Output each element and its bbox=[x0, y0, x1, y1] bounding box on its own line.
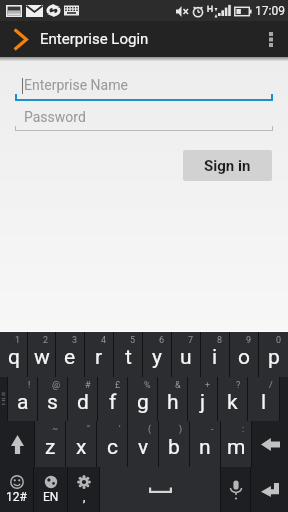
button[interactable]: 1 bbox=[0, 332, 27, 377]
staticText: 7 bbox=[188, 335, 194, 346]
staticText: a bbox=[17, 390, 29, 415]
button[interactable]: Backspace bbox=[252, 421, 288, 467]
staticText: # bbox=[85, 380, 91, 391]
staticText: d bbox=[77, 390, 89, 415]
button[interactable]: £ bbox=[98, 377, 127, 421]
staticText: o bbox=[238, 345, 250, 370]
button[interactable] bbox=[0, 377, 7, 421]
button[interactable]: ) bbox=[159, 421, 189, 467]
staticText: ? bbox=[236, 380, 241, 391]
other: Voice input bbox=[227, 479, 245, 501]
staticText: 5 bbox=[130, 335, 136, 346]
button[interactable]: 0 bbox=[259, 332, 288, 377]
staticText: e bbox=[64, 345, 76, 370]
staticText: r bbox=[95, 345, 103, 370]
button[interactable]: Enter bbox=[251, 467, 288, 512]
staticText: p bbox=[268, 345, 280, 370]
button[interactable]: Voice input bbox=[221, 467, 250, 512]
staticText: % bbox=[144, 380, 151, 391]
staticText: v bbox=[138, 435, 149, 460]
button[interactable]: : bbox=[221, 421, 251, 467]
staticText: ! bbox=[28, 380, 31, 391]
staticText: q bbox=[8, 345, 20, 370]
staticText: + bbox=[205, 380, 211, 391]
staticText: 2 bbox=[43, 335, 49, 346]
button[interactable]: " bbox=[66, 421, 96, 467]
button[interactable]: % bbox=[128, 377, 157, 421]
button[interactable]: + bbox=[188, 377, 217, 421]
staticText: ' bbox=[119, 424, 121, 435]
button[interactable]: EN bbox=[34, 467, 67, 512]
button[interactable]: 3 bbox=[56, 332, 84, 377]
staticText: 8 bbox=[217, 335, 223, 346]
staticText: t bbox=[125, 345, 132, 370]
staticText: , bbox=[83, 490, 86, 504]
staticText: ) bbox=[179, 424, 183, 435]
button[interactable]: ! bbox=[8, 377, 37, 421]
staticText: Enterprise Name bbox=[24, 77, 128, 93]
staticText: Password bbox=[24, 109, 86, 125]
button[interactable]: 4 bbox=[85, 332, 113, 377]
other: Backspace bbox=[261, 438, 280, 451]
staticText: 3 bbox=[72, 335, 78, 346]
button[interactable]: ' bbox=[97, 421, 127, 467]
button[interactable]: 8 bbox=[201, 332, 229, 377]
staticText: ~ bbox=[52, 424, 59, 435]
staticText: w bbox=[34, 345, 50, 370]
staticText: s bbox=[47, 390, 58, 415]
staticText: x bbox=[76, 435, 87, 460]
staticText: - bbox=[211, 424, 214, 435]
button[interactable]: More options bbox=[254, 21, 288, 57]
button[interactable]: # bbox=[68, 377, 97, 421]
staticText: 17:09 bbox=[255, 4, 285, 18]
staticText: c bbox=[107, 435, 118, 460]
staticText: 4 bbox=[101, 335, 107, 346]
staticText: i bbox=[212, 345, 218, 370]
button[interactable]: 5 bbox=[114, 332, 142, 377]
button[interactable]: 12# bbox=[0, 467, 33, 512]
staticText: £ bbox=[115, 380, 121, 391]
button[interactable]: ~ bbox=[35, 421, 65, 467]
staticText: 12# bbox=[6, 490, 27, 504]
button[interactable]: Sign in bbox=[183, 150, 272, 181]
staticText: b bbox=[168, 435, 180, 460]
staticText: f bbox=[109, 390, 117, 415]
staticText: Sign in bbox=[204, 157, 251, 175]
staticText: z bbox=[45, 435, 56, 460]
button[interactable]: , bbox=[68, 467, 99, 512]
button[interactable]: @ bbox=[38, 377, 67, 421]
other: Shift bbox=[11, 435, 24, 454]
button[interactable]: Space bbox=[100, 467, 220, 512]
staticText: y bbox=[152, 345, 162, 370]
staticText: & bbox=[175, 380, 181, 391]
button[interactable]: Navigate up bbox=[0, 21, 40, 57]
staticText: 1 bbox=[15, 335, 21, 346]
staticText: g bbox=[137, 390, 149, 415]
other: Enter bbox=[261, 483, 279, 497]
staticText: 9 bbox=[246, 335, 252, 346]
button[interactable]: - bbox=[190, 421, 220, 467]
button[interactable]: Shift bbox=[0, 421, 34, 467]
button[interactable]: 6 bbox=[143, 332, 171, 377]
button[interactable]: 7 bbox=[172, 332, 200, 377]
staticText: j bbox=[200, 390, 206, 415]
button[interactable]: 2 bbox=[28, 332, 55, 377]
button[interactable]: ? bbox=[218, 377, 247, 421]
staticText: @ bbox=[52, 380, 61, 391]
staticText: u bbox=[180, 345, 192, 370]
staticText: m bbox=[227, 435, 246, 460]
other: Space bbox=[149, 486, 172, 493]
staticText: l bbox=[261, 390, 267, 415]
button[interactable]: / bbox=[248, 377, 279, 421]
button[interactable]: 9 bbox=[230, 332, 258, 377]
staticText: " bbox=[87, 424, 90, 435]
staticText: h bbox=[167, 390, 179, 415]
staticText: ( bbox=[148, 424, 152, 435]
staticText: / bbox=[269, 380, 273, 391]
button[interactable]: & bbox=[158, 377, 187, 421]
staticText: EN bbox=[43, 490, 59, 504]
staticText: Enterprise Login bbox=[40, 30, 149, 48]
button[interactable]: ( bbox=[128, 421, 158, 467]
staticText: n bbox=[199, 435, 211, 460]
